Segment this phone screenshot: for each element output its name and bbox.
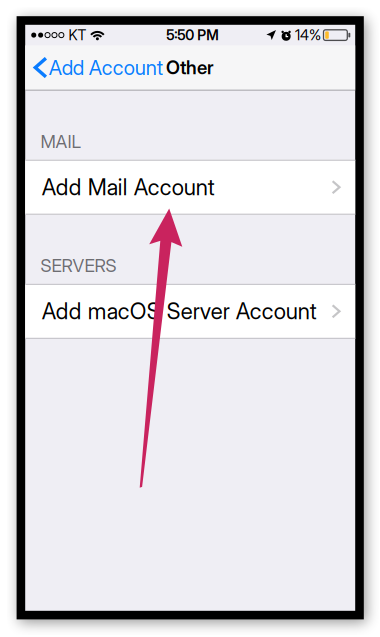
staticText: MAIL [40,131,81,152]
button[interactable]: Add Account [25,45,164,90]
staticText: Add Mail Account [42,174,215,201]
staticText: Add Account [49,55,163,80]
staticText: KT [68,26,86,44]
button[interactable]: Add macOS Server Account [25,284,355,339]
button[interactable]: Add Mail Account [25,160,355,215]
staticText: 14% [295,26,321,44]
staticText: SERVERS [40,255,116,276]
staticText: Other [166,56,214,79]
staticText: Add macOS Server Account [42,298,317,325]
staticText: 5:50 PM [166,26,218,44]
